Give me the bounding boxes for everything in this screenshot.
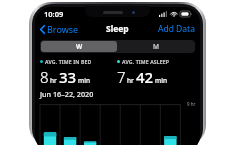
- staticText: min: [155, 76, 167, 85]
- staticText: 42: [136, 67, 154, 87]
- staticText: M: [153, 42, 159, 51]
- staticText: Sleep: [106, 23, 129, 35]
- staticText: AVG. TIME ASLEEP: [122, 58, 170, 65]
- staticText: hr: [127, 76, 134, 85]
- staticText: W: [76, 42, 83, 51]
- staticText: 10:09: [44, 9, 64, 19]
- staticText: hr: [50, 76, 57, 85]
- staticText: Add Data: [158, 23, 195, 35]
- staticText: min: [78, 76, 90, 85]
- button[interactable]: M: [117, 41, 194, 52]
- staticText: 33: [59, 67, 77, 87]
- staticText: 7: [117, 67, 126, 87]
- staticText: 8: [40, 67, 49, 87]
- button[interactable]: Browse: [35, 21, 83, 37]
- button[interactable]: W: [41, 41, 117, 52]
- staticText: Browse: [47, 23, 79, 35]
- staticText: 9 hr: [187, 101, 196, 107]
- button[interactable]: Add Data: [153, 21, 200, 37]
- staticText: Jun 16–22, 2020: [40, 89, 94, 99]
- staticText: AVG. TIME IN BED: [45, 58, 92, 65]
